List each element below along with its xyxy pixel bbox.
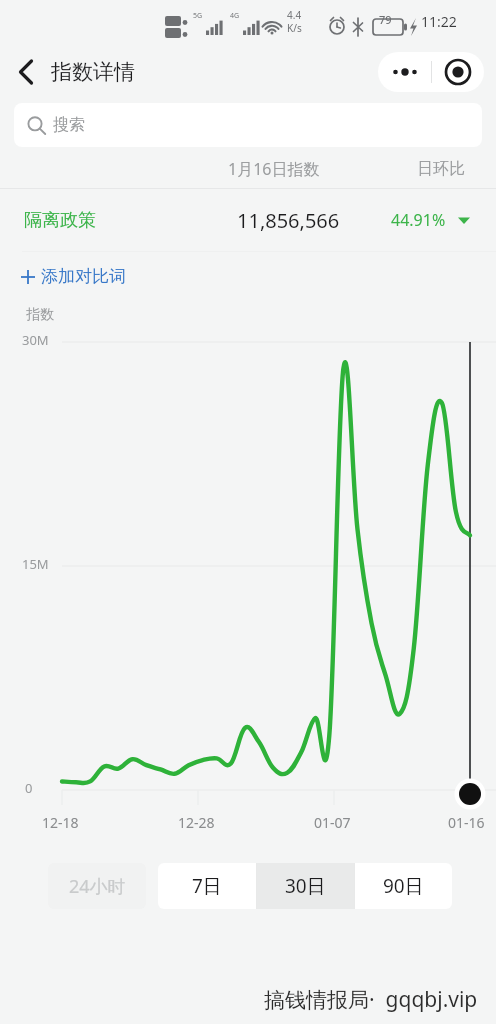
button[interactable]: Back bbox=[4, 50, 48, 94]
staticText: 11,856,566 bbox=[237, 207, 340, 234]
button[interactable]: 30日 bbox=[257, 863, 354, 909]
staticText: 01-07 bbox=[314, 813, 351, 832]
button[interactable]: 90日 bbox=[355, 863, 452, 909]
button[interactable]: Locate bbox=[432, 52, 484, 92]
button[interactable]: 隔离政策 bbox=[0, 189, 496, 251]
staticText: 4G bbox=[230, 11, 240, 21]
staticText: 79 bbox=[379, 12, 392, 27]
staticText: 44.91% bbox=[391, 209, 446, 231]
button[interactable]: 24小时 bbox=[48, 863, 146, 909]
staticText: 90日 bbox=[383, 873, 424, 899]
staticText: 搜索 bbox=[53, 115, 85, 135]
staticText: 1月16日指数 bbox=[228, 158, 320, 180]
button[interactable]: 7日 bbox=[158, 863, 256, 909]
staticText: 01-16 bbox=[448, 813, 485, 832]
staticText: 7日 bbox=[192, 873, 222, 899]
staticText: 24小时 bbox=[69, 874, 126, 899]
button[interactable]: More options bbox=[378, 52, 431, 92]
button[interactable]: 搜索 bbox=[14, 103, 482, 147]
staticText: 指数详情 bbox=[51, 59, 135, 85]
button[interactable]: 添加对比词 bbox=[20, 266, 126, 287]
staticText: 12-18 bbox=[42, 813, 79, 832]
staticText: 指数 bbox=[26, 306, 54, 324]
staticText: 30日 bbox=[285, 873, 326, 899]
staticText: 4.4 bbox=[287, 8, 302, 22]
staticText: 15M bbox=[22, 555, 49, 573]
staticText: 隔离政策 bbox=[24, 209, 96, 232]
staticText: 搞钱情报局· gqqbj.vip bbox=[264, 985, 478, 1014]
staticText: 11:22 bbox=[421, 12, 457, 31]
staticText: 12-28 bbox=[178, 813, 215, 832]
staticText: 日环比 bbox=[417, 159, 465, 179]
staticText: 添加对比词 bbox=[41, 266, 126, 287]
staticText: K/s bbox=[287, 21, 302, 35]
staticText: 0 bbox=[25, 779, 33, 797]
staticText: 30M bbox=[22, 331, 49, 349]
staticText: 5G bbox=[193, 11, 203, 21]
